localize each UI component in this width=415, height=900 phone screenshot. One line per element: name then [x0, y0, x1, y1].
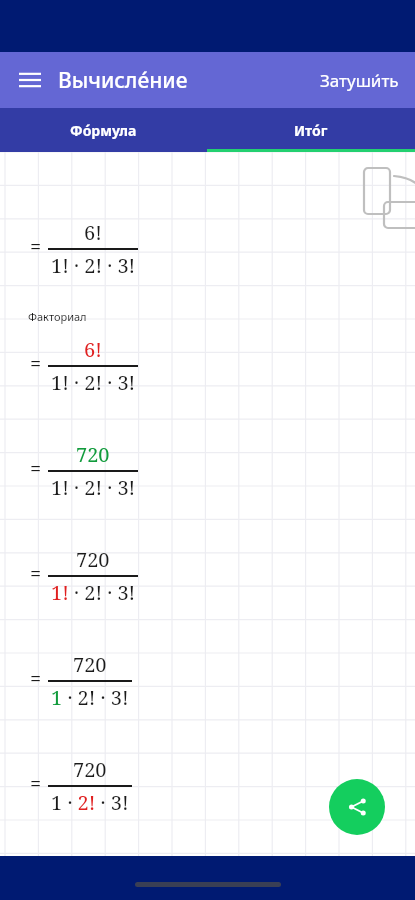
staticText: =	[30, 455, 42, 482]
staticText: 720	[73, 756, 107, 783]
staticText: =	[30, 233, 42, 260]
staticText: 720	[76, 546, 110, 573]
staticText: 1! · 2! · 3!	[51, 474, 136, 501]
staticText: 6!	[84, 219, 102, 246]
staticText: =	[30, 770, 42, 797]
staticText: 720	[76, 441, 110, 468]
staticText: 1 · 2! · 3!	[51, 684, 129, 711]
staticText: =	[30, 665, 42, 692]
staticText: Факториал	[28, 309, 87, 324]
staticText: 1 · 2! · 3!	[51, 789, 129, 816]
button[interactable]: Rotate screen	[352, 158, 402, 208]
staticText: Ито́г	[294, 121, 328, 140]
staticText: 1! · 2! · 3!	[51, 252, 136, 279]
staticText: Затуши́ть	[320, 69, 399, 92]
staticText: Фо́рмула	[70, 121, 137, 140]
button[interactable]: Menu	[8, 58, 52, 102]
staticText: 1! · 2! · 3!	[51, 369, 136, 396]
staticText: 6!	[84, 336, 102, 363]
button[interactable]: Фо́рмула	[0, 108, 207, 152]
button[interactable]: Затуши́ть	[316, 61, 403, 100]
staticText: Вычисле́ние	[58, 66, 188, 95]
button[interactable]: Share	[329, 779, 385, 835]
staticText: =	[30, 350, 42, 377]
staticText: 720	[73, 651, 107, 678]
staticText: =	[30, 560, 42, 587]
button[interactable]: Ито́г	[207, 108, 415, 152]
staticText: 1! · 2! · 3!	[51, 579, 136, 606]
